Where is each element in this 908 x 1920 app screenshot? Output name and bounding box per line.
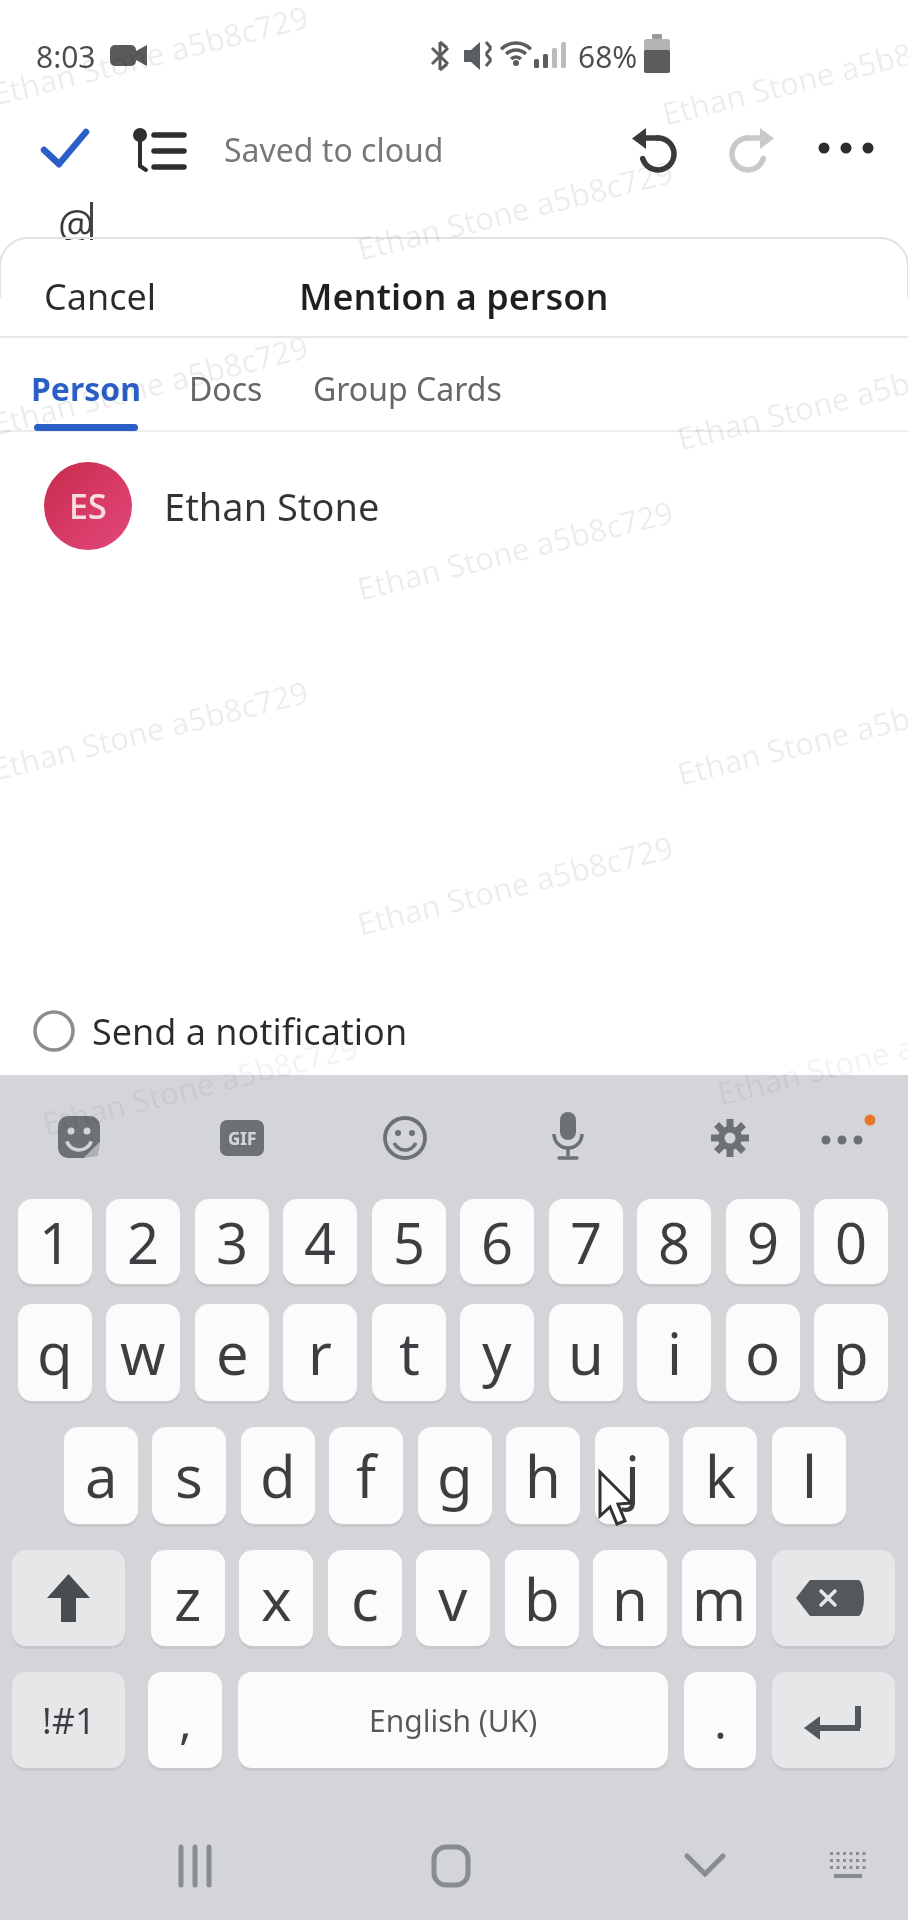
button[interactable]: b xyxy=(505,1550,579,1646)
staticText: Ethan Stone a5b8c729 xyxy=(38,1025,362,1144)
button[interactable]: j xyxy=(595,1427,669,1524)
button[interactable]: y xyxy=(460,1304,534,1401)
staticText: t xyxy=(399,1313,420,1392)
staticText: s xyxy=(175,1436,203,1515)
button[interactable] xyxy=(238,1672,668,1768)
button[interactable]: GIF xyxy=(220,1120,264,1156)
staticText: u xyxy=(568,1313,604,1392)
staticText: 1 xyxy=(39,1204,72,1280)
staticText: a xyxy=(85,1436,118,1515)
staticText: f xyxy=(356,1436,376,1515)
button[interactable]: h xyxy=(506,1427,580,1524)
staticText: 7 xyxy=(570,1204,603,1280)
button[interactable]: s xyxy=(152,1427,226,1524)
button[interactable]: u xyxy=(549,1304,623,1401)
button[interactable]: v xyxy=(416,1550,490,1646)
staticText: c xyxy=(351,1559,379,1638)
button[interactable] xyxy=(772,1672,895,1768)
staticText: w xyxy=(120,1313,166,1392)
staticText: Ethan Stone a5b8c729 xyxy=(353,825,677,944)
button[interactable] xyxy=(772,1550,895,1646)
staticText: 2 xyxy=(127,1204,160,1280)
button[interactable]: 6 xyxy=(460,1199,534,1284)
button[interactable]: g xyxy=(418,1427,492,1524)
button[interactable] xyxy=(685,1852,727,1880)
button[interactable]: e xyxy=(195,1304,269,1401)
button[interactable]: k xyxy=(683,1427,757,1524)
staticText: . xyxy=(714,1688,727,1753)
button[interactable]: 4 xyxy=(283,1199,357,1284)
staticText: Ethan Stone a5b8c729 xyxy=(353,150,677,269)
staticText: GIF xyxy=(228,1127,257,1150)
button[interactable] xyxy=(708,1116,752,1160)
button[interactable]: ES xyxy=(0,440,908,572)
staticText: Ethan Stone a5b8c729 xyxy=(658,15,908,134)
button[interactable]: t xyxy=(372,1304,446,1401)
staticText: 9 xyxy=(747,1204,780,1280)
button[interactable]: m xyxy=(682,1550,756,1646)
button[interactable]: , xyxy=(148,1672,222,1768)
staticText: q xyxy=(37,1313,73,1392)
button[interactable]: l xyxy=(772,1427,846,1524)
button[interactable]: 7 xyxy=(549,1199,623,1284)
staticText: 5 xyxy=(393,1204,426,1280)
staticText: b xyxy=(524,1559,560,1638)
button[interactable]: w xyxy=(106,1304,180,1401)
button[interactable]: Person xyxy=(24,364,148,414)
button[interactable]: c xyxy=(328,1550,402,1646)
staticText: Ethan Stone a5b8c729 xyxy=(673,340,908,459)
button[interactable] xyxy=(726,126,776,176)
button[interactable]: 9 xyxy=(726,1199,800,1284)
staticText: 3 xyxy=(216,1204,249,1280)
button[interactable]: . xyxy=(684,1672,756,1768)
staticText: 4 xyxy=(304,1204,337,1280)
staticText: p xyxy=(833,1313,869,1392)
staticText: !#1 xyxy=(42,1696,96,1745)
staticText: o xyxy=(745,1313,781,1392)
button[interactable] xyxy=(128,126,186,174)
button[interactable] xyxy=(42,128,88,168)
staticText: Ethan Stone a5b8c729 xyxy=(713,995,908,1114)
staticText: , xyxy=(179,1688,192,1753)
button[interactable]: n xyxy=(593,1550,667,1646)
button[interactable] xyxy=(178,1845,218,1887)
button[interactable] xyxy=(820,1112,880,1152)
button[interactable]: 1 xyxy=(18,1199,92,1284)
button[interactable] xyxy=(12,1550,125,1646)
button[interactable] xyxy=(383,1116,427,1160)
button[interactable] xyxy=(548,1112,588,1164)
button[interactable]: 8 xyxy=(637,1199,711,1284)
button[interactable]: !#1 xyxy=(12,1672,125,1768)
button[interactable]: 0 xyxy=(814,1199,888,1284)
staticText: j xyxy=(625,1436,640,1515)
staticText: r xyxy=(308,1313,332,1392)
button[interactable]: q xyxy=(18,1304,92,1401)
button[interactable]: p xyxy=(814,1304,888,1401)
button[interactable] xyxy=(432,1845,472,1887)
button[interactable]: 2 xyxy=(106,1199,180,1284)
button[interactable]: f xyxy=(329,1427,403,1524)
button[interactable]: o xyxy=(726,1304,800,1401)
staticText: Docs xyxy=(189,367,263,411)
button[interactable]: Cancel xyxy=(44,270,204,322)
staticText: z xyxy=(174,1559,202,1638)
button[interactable]: Group Cards xyxy=(302,364,512,414)
button[interactable] xyxy=(58,1116,102,1160)
staticText: 0 xyxy=(835,1204,868,1280)
staticText: @ xyxy=(58,196,94,248)
button[interactable]: i xyxy=(637,1304,711,1401)
button[interactable] xyxy=(816,140,876,156)
button[interactable]: Send a notification xyxy=(0,990,908,1075)
button[interactable]: d xyxy=(241,1427,315,1524)
button[interactable]: z xyxy=(151,1550,225,1646)
staticText: Ethan Stone a5b8c729 xyxy=(0,0,312,114)
button[interactable]: a xyxy=(64,1427,138,1524)
button[interactable]: x xyxy=(239,1550,313,1646)
button[interactable] xyxy=(630,126,680,176)
button[interactable]: Docs xyxy=(176,364,276,414)
button[interactable]: r xyxy=(283,1304,357,1401)
button[interactable]: 3 xyxy=(195,1199,269,1284)
button[interactable] xyxy=(828,1848,868,1884)
button[interactable]: 5 xyxy=(372,1199,446,1284)
staticText: Group Cards xyxy=(313,367,502,411)
